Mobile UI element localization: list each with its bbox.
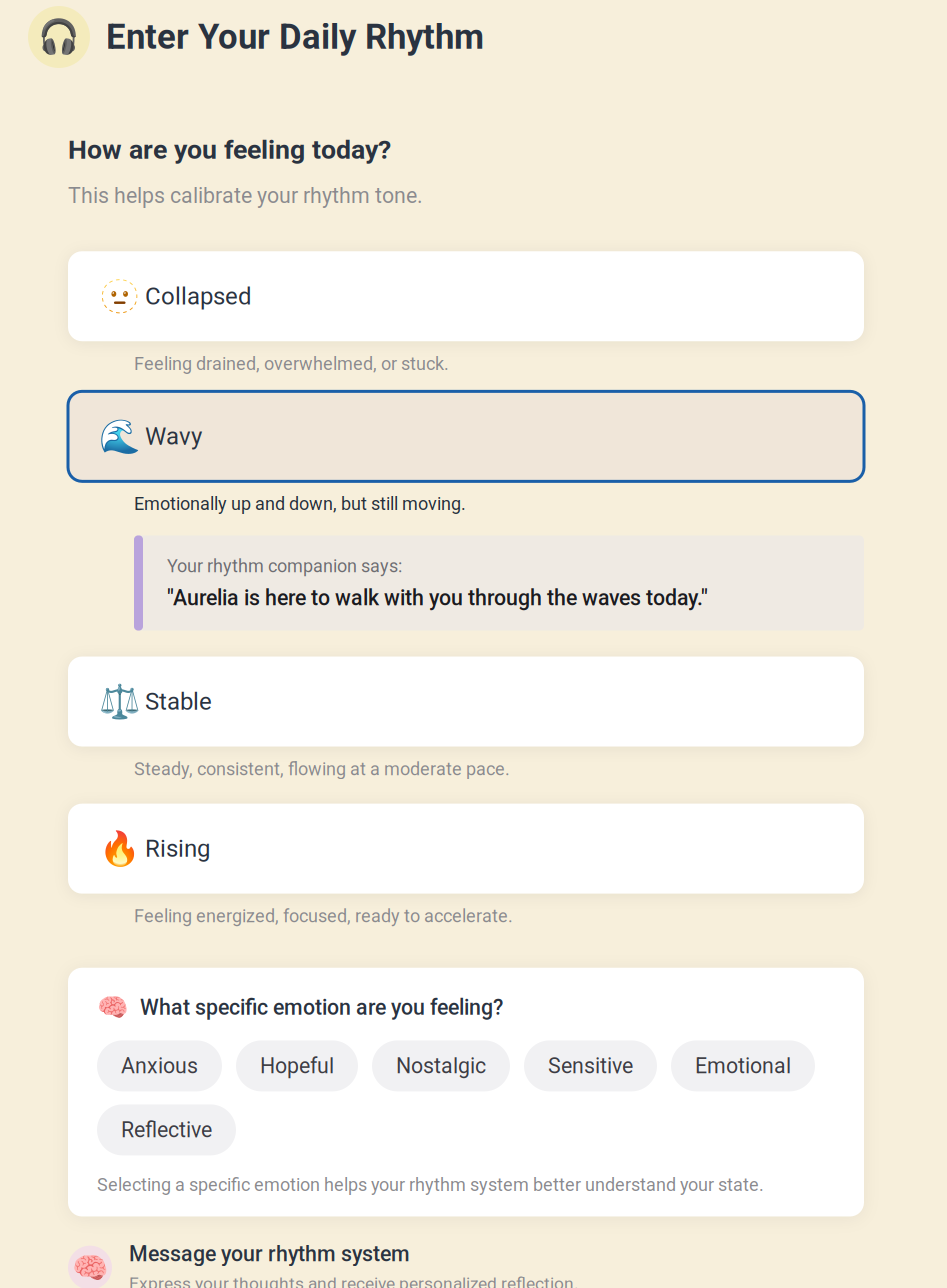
staticText: Selecting a specific emotion helps your … [97,1174,764,1195]
staticText: 🧠 [97,993,129,1022]
staticText: Collapsed [145,282,252,310]
staticText: Nostalgic [396,1053,486,1078]
button[interactable]: Emotional [671,1040,815,1091]
button[interactable]: 🌊 [68,391,864,481]
staticText: Feeling energized, focused, ready to acc… [134,906,513,927]
staticText: 🧠 [71,1250,108,1285]
staticText: Rising [145,835,210,863]
button[interactable]: Reflective [97,1104,236,1155]
staticText: Message your rhythm system [129,1241,410,1266]
staticText: Wavy [145,422,202,450]
staticText: 🎧 [38,17,80,57]
button[interactable]: 🧠 [68,1241,864,1288]
button[interactable]: Nostalgic [372,1040,510,1091]
staticText: "Aurelia is here to walk with you throug… [167,585,708,610]
staticText: How are you feeling today? [68,134,391,165]
staticText: Enter Your Daily Rhythm [106,17,484,57]
staticText: Hopeful [260,1053,334,1078]
staticText: Anxious [121,1053,198,1078]
staticText: Sensitive [548,1053,633,1078]
staticText: Express your thoughts and receive person… [129,1273,579,1288]
staticText: Your rhythm companion says: [167,555,402,576]
staticText: Steady, consistent, flowing at a moderat… [134,758,510,780]
button[interactable]: 🔥 [68,804,864,894]
staticText: Emotionally up and down, but still movin… [134,493,466,514]
button[interactable]: Sensitive [524,1040,657,1091]
staticText: Emotional [695,1053,791,1078]
staticText: What specific emotion are you feeling? [140,995,503,1020]
staticText: 🔥 [99,829,141,868]
staticText: 🌊 [99,417,141,456]
staticText: 🫥 [99,277,141,316]
staticText: ⚖️ [99,682,141,721]
button[interactable]: Anxious [97,1040,222,1091]
button[interactable]: 🫥 [68,251,864,341]
staticText: Feeling drained, overwhelmed, or stuck. [134,353,449,374]
button[interactable]: ⚖️ [68,656,864,746]
staticText: Stable [145,687,212,716]
button[interactable]: Hopeful [236,1040,358,1091]
staticText: Reflective [121,1117,212,1142]
staticText: This helps calibrate your rhythm tone. [68,183,423,208]
